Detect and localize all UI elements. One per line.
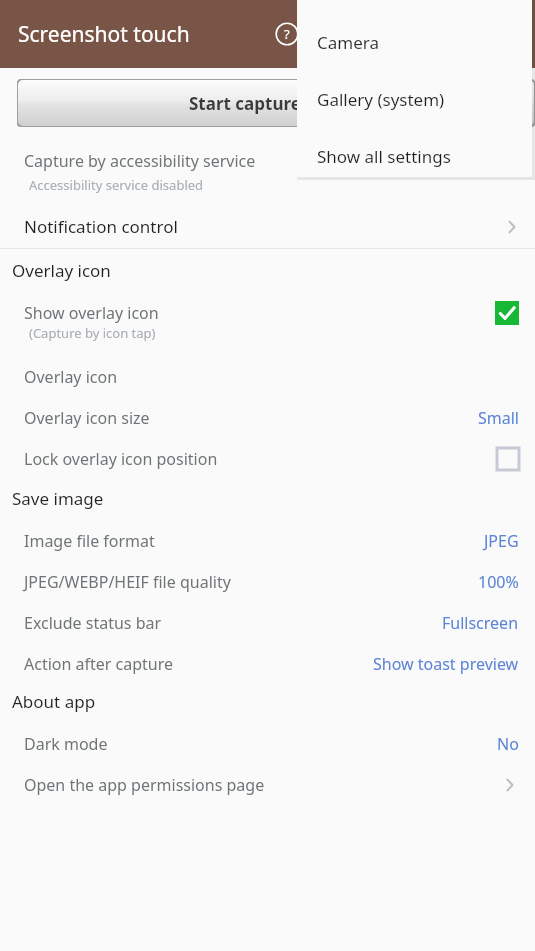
staticText: Show all settings [317, 145, 451, 168]
button[interactable]: Lock overlay icon position [0, 442, 535, 476]
button[interactable]: Gallery (system) [297, 79, 532, 119]
staticText: Image file format [24, 530, 155, 552]
staticText: About app [12, 690, 96, 713]
staticText: Show toast preview [373, 653, 519, 675]
button[interactable]: Exclude status bar [0, 606, 535, 640]
staticText: Notification control [24, 215, 178, 238]
staticText: Lock overlay icon position [24, 448, 218, 470]
button[interactable]: Show overlay icon [0, 296, 535, 330]
button[interactable]: Start capture monitor [17, 79, 535, 127]
staticText: Start capture monitor [189, 92, 375, 115]
button[interactable]: Notification control [0, 205, 535, 248]
button[interactable]: Camera [297, 22, 532, 62]
staticText: No [497, 733, 519, 755]
staticText: Camera [317, 31, 379, 54]
staticText: 100% [478, 571, 519, 593]
button[interactable]: Show all settings [297, 136, 532, 176]
staticText: Open the app permissions page [24, 774, 265, 796]
staticText: (Capture by icon tap) [29, 324, 156, 342]
button[interactable]: Image file format [0, 524, 535, 558]
staticText: JPEG/WEBP/HEIF file quality [24, 571, 231, 593]
staticText: Screenshot touch [18, 20, 190, 49]
staticText: Fullscreen [442, 612, 519, 634]
button[interactable]: Action after capture [0, 647, 535, 681]
staticText: Accessibility service disabled [29, 176, 204, 194]
staticText: Gallery (system) [317, 88, 445, 111]
staticText: Capture by accessibility service [24, 150, 256, 172]
staticText: Action after capture [24, 653, 174, 675]
staticText: ? [284, 25, 290, 43]
button[interactable]: JPEG/WEBP/HEIF file quality [0, 565, 535, 599]
button[interactable]: Overlay icon [0, 360, 535, 394]
staticText: Show overlay icon [24, 302, 159, 324]
button[interactable]: Help [269, 16, 305, 52]
staticText: Overlay icon [24, 366, 118, 388]
staticText: JPEG [484, 530, 519, 552]
staticText: Dark mode [24, 733, 108, 755]
button[interactable]: Open the app permissions page [0, 768, 535, 802]
staticText: Save image [12, 487, 104, 510]
staticText: Overlay icon [12, 259, 111, 282]
button[interactable]: Overlay icon size [0, 401, 535, 435]
staticText: Overlay icon size [24, 407, 150, 429]
button[interactable]: Dark mode [0, 727, 535, 761]
staticText: Small [478, 407, 519, 429]
staticText: Exclude status bar [24, 612, 162, 634]
